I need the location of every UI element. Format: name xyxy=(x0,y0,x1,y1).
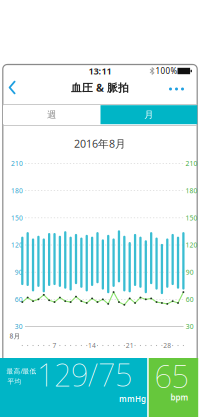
staticText: 2016年8月 xyxy=(74,136,126,151)
staticText: 150 xyxy=(11,213,23,222)
button[interactable]: 週 xyxy=(3,105,100,124)
staticText: 129/75 xyxy=(37,354,132,395)
staticText: 30 xyxy=(15,322,23,331)
staticText: 210 xyxy=(185,159,197,168)
staticText: 14 xyxy=(88,341,96,350)
button[interactable]: More options xyxy=(162,77,190,101)
staticText: 最高/最低 xyxy=(6,367,36,375)
staticText: 7 xyxy=(52,341,56,350)
staticText: 180 xyxy=(185,186,197,195)
button[interactable]: Back xyxy=(0,72,24,102)
staticText: 120 xyxy=(185,241,197,249)
staticText: 28 xyxy=(163,341,171,350)
staticText: mmHg xyxy=(119,394,146,404)
staticText: 月 xyxy=(144,109,153,120)
staticText: 90 xyxy=(15,268,23,277)
staticText: 13:11 xyxy=(88,65,111,77)
staticText: 100% xyxy=(155,66,177,76)
staticText: bpm xyxy=(170,392,188,403)
staticText: 150 xyxy=(185,213,197,222)
button[interactable]: 月 xyxy=(100,105,197,124)
staticText: 21 xyxy=(126,341,134,350)
staticText: 90 xyxy=(186,268,194,277)
staticText: 8月 xyxy=(9,332,20,340)
staticText: 60 xyxy=(15,295,23,304)
staticText: 週 xyxy=(47,109,56,120)
staticText: 血圧 & 脈拍 xyxy=(71,80,129,95)
staticText: 210 xyxy=(11,159,23,168)
staticText: 平均 xyxy=(7,377,21,386)
staticText: 65 xyxy=(154,356,188,396)
staticText: 60 xyxy=(186,295,194,304)
staticText: 30 xyxy=(186,322,194,331)
staticText: 120 xyxy=(11,241,23,249)
staticText: 180 xyxy=(11,186,23,195)
